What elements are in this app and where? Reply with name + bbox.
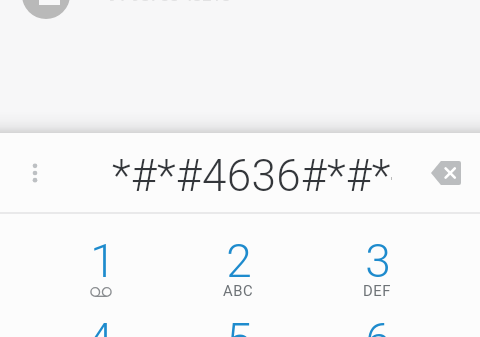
staticText: ABC: [223, 282, 254, 299]
staticText: +91 98765 43210: [98, 0, 231, 5]
button[interactable]: 3: [308, 214, 447, 293]
staticText: 1: [90, 234, 116, 288]
staticText: DEF: [363, 282, 392, 299]
button[interactable]: More options: [14, 152, 56, 194]
button[interactable]: 1: [31, 214, 169, 293]
staticText: 3: [365, 234, 391, 288]
staticText: 4: [87, 313, 113, 337]
staticText: 2: [226, 234, 252, 288]
staticText: 6: [365, 313, 391, 337]
button[interactable]: 5: [169, 293, 308, 337]
button[interactable]: 2: [169, 214, 308, 293]
button[interactable]: Backspace: [422, 149, 470, 197]
button[interactable]: 6: [308, 293, 447, 337]
staticText: 5: [226, 313, 252, 337]
button[interactable]: 4: [31, 293, 169, 337]
staticText: *#*#4636#*#*: [112, 150, 391, 202]
